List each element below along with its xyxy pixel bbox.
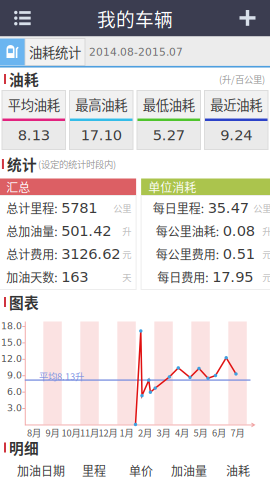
staticText: 12.0 — [1, 353, 22, 364]
staticText: (升/百公里) — [219, 72, 265, 86]
staticText: 每日费用: — [157, 268, 211, 286]
staticText: 5月 — [194, 426, 208, 439]
staticText: (设定的统计时段内) — [38, 157, 116, 171]
staticText: 公里 — [253, 201, 270, 215]
staticText: 6.0 — [7, 386, 22, 397]
staticText: 9月 — [45, 426, 59, 439]
button[interactable]: 油耗统计 — [25, 38, 85, 65]
staticText: 统计 — [7, 153, 37, 175]
staticText: 12月 — [98, 426, 117, 439]
staticText: 每日里程: — [153, 199, 207, 217]
staticText: 天 — [122, 270, 131, 284]
staticText: 最高油耗 — [75, 95, 127, 114]
staticText: 10月 — [61, 426, 80, 439]
button[interactable]: Menu — [0, 0, 45, 36]
button[interactable]: Fuel — [0, 38, 25, 65]
staticText: 总计里程: — [6, 199, 60, 217]
staticText: 17.10 — [81, 127, 122, 144]
staticText: 平均油耗 — [8, 95, 60, 114]
staticText: 1月 — [119, 426, 133, 439]
staticText: 汇总 — [6, 178, 30, 196]
staticText: 每公里油耗: — [156, 222, 222, 240]
staticText: 加油量 — [171, 462, 207, 479]
staticText: 8月 — [27, 426, 41, 439]
staticText: 6月 — [212, 426, 226, 439]
staticText: 我的车辆 — [97, 4, 173, 31]
staticText: 元 — [262, 270, 270, 284]
staticText: 油耗 — [9, 68, 39, 90]
staticText: 163 — [61, 268, 88, 286]
staticText: 单价 — [129, 462, 153, 479]
staticText: 元 — [122, 247, 131, 261]
staticText: 升 — [122, 224, 131, 238]
staticText: 18.0 — [1, 321, 22, 331]
staticText: 11月 — [80, 426, 99, 439]
staticText: 3126.62 — [61, 245, 120, 263]
staticText: 油耗 — [226, 462, 250, 479]
staticText: 升 — [262, 224, 270, 238]
staticText: 17.95 — [212, 268, 253, 286]
staticText: 最近油耗 — [210, 95, 262, 114]
staticText: 平均8.13升 — [39, 369, 84, 383]
staticText: 明细 — [9, 437, 39, 458]
staticText: 最低油耗 — [143, 95, 195, 114]
staticText: 单位消耗 — [148, 178, 196, 196]
staticText: 里程 — [82, 462, 106, 479]
staticText: 加油日期 — [17, 462, 65, 479]
staticText: 元 — [262, 247, 270, 261]
staticText: 3.0 — [7, 403, 22, 414]
staticText: 3月 — [157, 426, 171, 439]
staticText: 9.0 — [7, 370, 22, 381]
staticText: 总计费用: — [6, 245, 60, 263]
staticText: 图表 — [9, 291, 39, 313]
staticText: 5.27 — [153, 127, 185, 144]
staticText: 2014.08-2015.07 — [89, 46, 183, 58]
staticText: 0.08 — [223, 222, 255, 240]
staticText: 9.24 — [220, 127, 252, 144]
staticText: 总加油量: — [6, 222, 60, 240]
staticText: 公里 — [113, 201, 131, 215]
staticText: 0.51 — [223, 245, 255, 263]
staticText: 35.47 — [208, 199, 249, 217]
staticText: 2月 — [138, 426, 152, 439]
staticText: 501.42 — [61, 222, 111, 240]
staticText: 7月 — [231, 426, 245, 439]
staticText: 4月 — [175, 426, 189, 439]
staticText: 每公里费用: — [156, 245, 222, 263]
staticText: 15.0 — [1, 337, 22, 348]
button[interactable]: Add vehicle — [225, 0, 270, 36]
staticText: 加油天数: — [6, 268, 60, 286]
staticText: 8.13 — [18, 127, 50, 144]
staticText: 油耗统计 — [29, 42, 81, 62]
staticText: 5781 — [61, 199, 97, 217]
